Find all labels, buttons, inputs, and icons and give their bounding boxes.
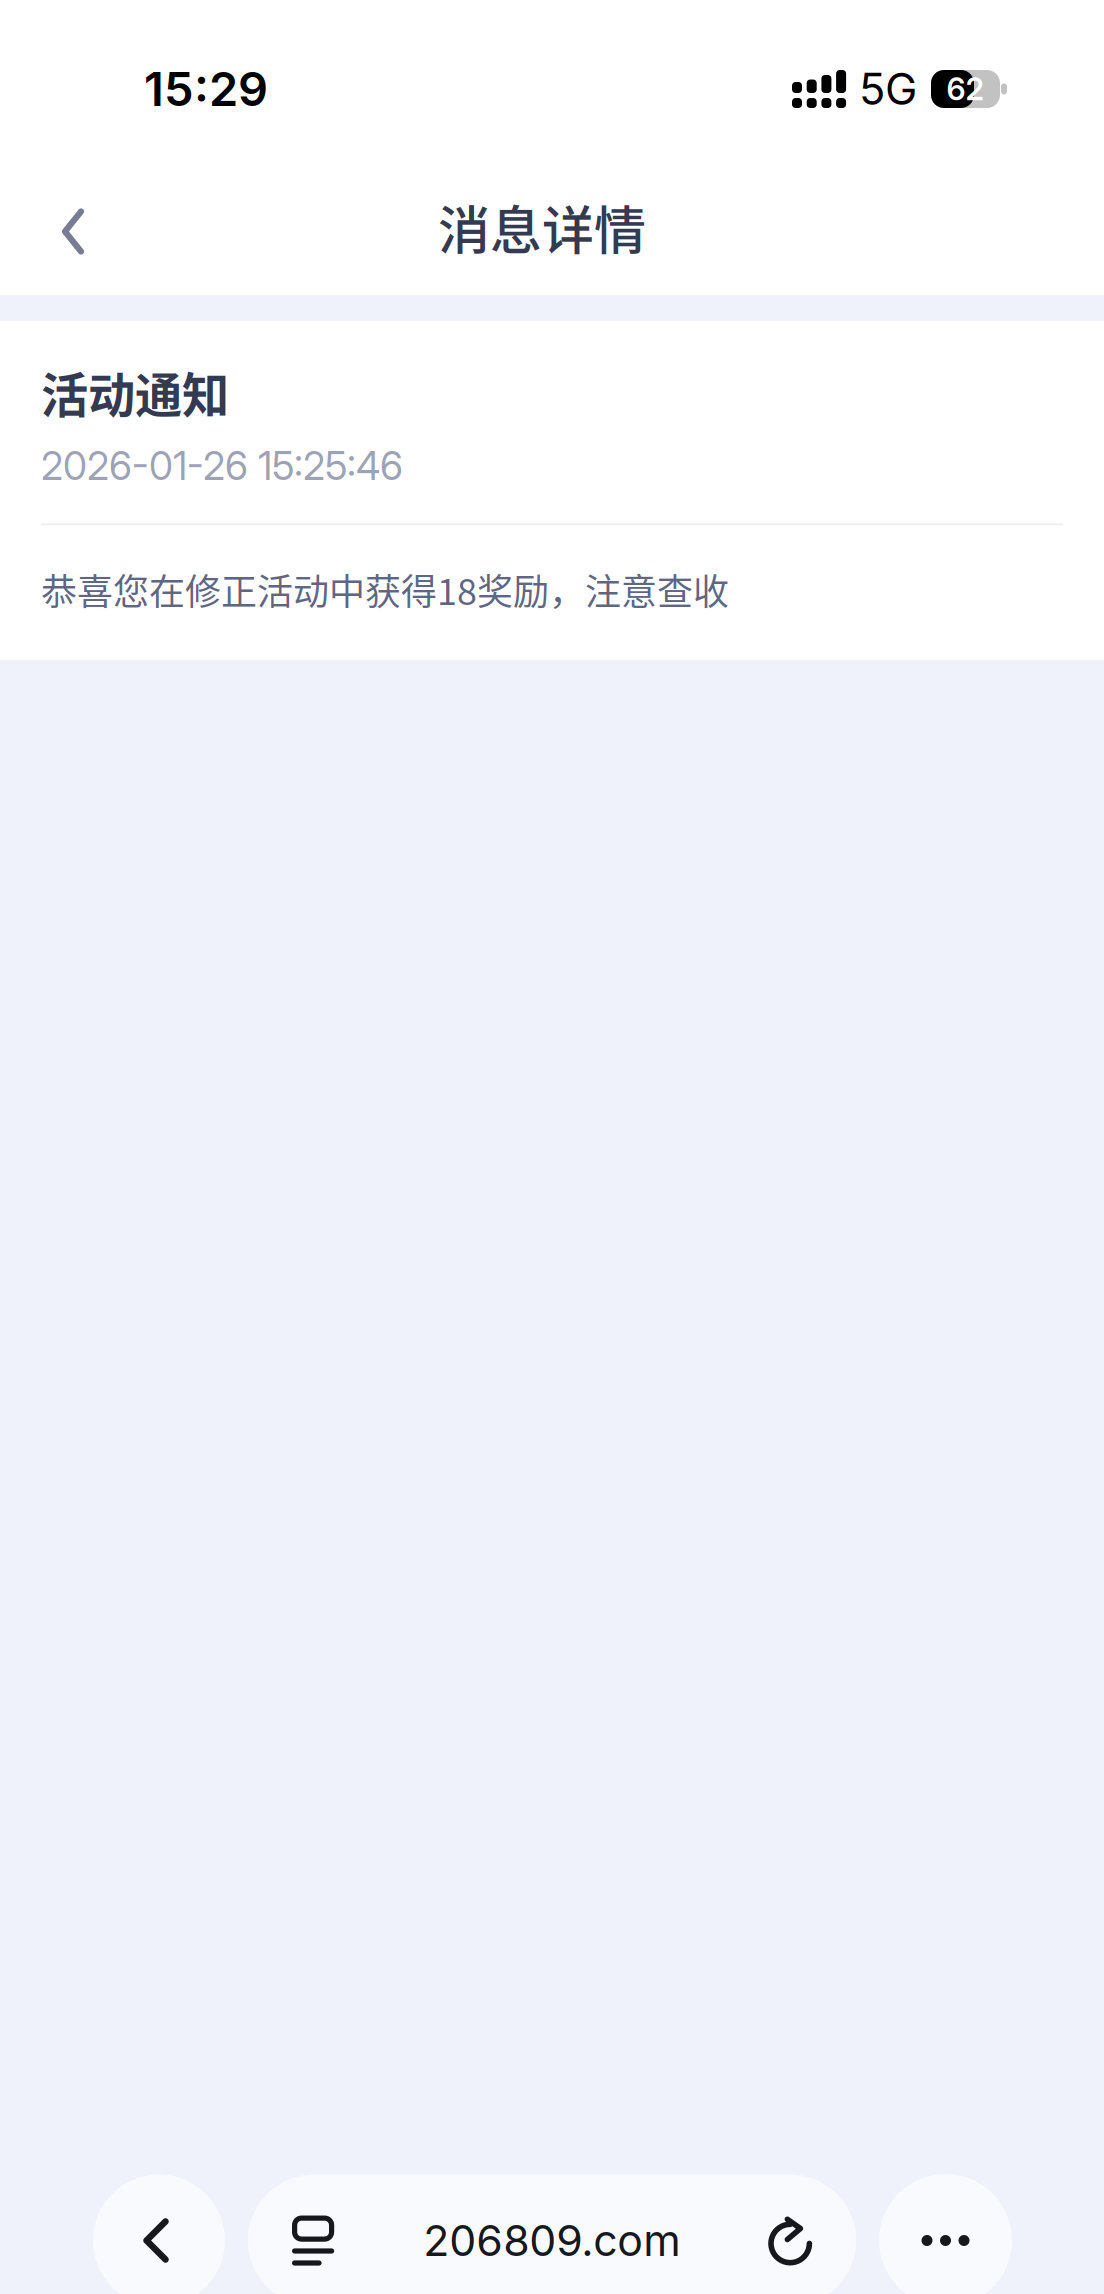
staticText: 2026-01-26 15:25:46 [41,442,403,489]
staticText: 62 [946,70,984,107]
staticText: 15:29 [144,61,268,117]
staticText: 5G [859,63,917,115]
staticText: 206809.com [423,2215,680,2266]
button[interactable]: 206809.com [248,2174,856,2294]
staticText: 消息详情 [438,189,646,265]
staticText: 活动通知 [41,358,229,426]
button[interactable]: Back [93,2174,225,2294]
button[interactable]: Back [25,183,121,289]
button[interactable]: More options [879,2174,1012,2294]
staticText: 恭喜您在修正活动中获得18奖励，注意查收 [41,563,729,615]
